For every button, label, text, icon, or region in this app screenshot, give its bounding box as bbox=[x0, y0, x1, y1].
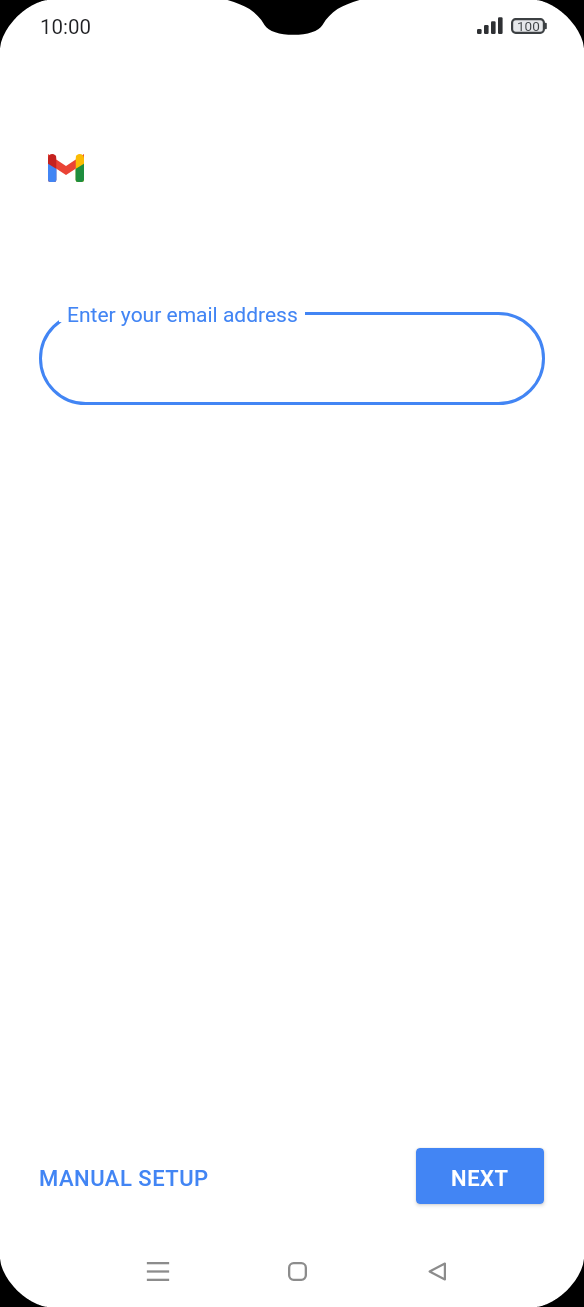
button[interactable]: Recent apps bbox=[130, 1243, 186, 1299]
button[interactable]: MANUAL SETUP bbox=[23, 1151, 225, 1207]
staticText: MANUAL SETUP bbox=[39, 1166, 209, 1192]
button[interactable]: Home bbox=[269, 1243, 325, 1299]
button[interactable]: NEXT bbox=[416, 1148, 544, 1204]
staticText: 100 bbox=[517, 18, 540, 34]
staticText: Enter your email address bbox=[67, 303, 298, 328]
staticText: NEXT bbox=[451, 1166, 509, 1192]
button[interactable]: Enter your email address bbox=[39, 312, 545, 405]
button[interactable]: Back bbox=[409, 1243, 465, 1299]
staticText: 10:00 bbox=[40, 15, 92, 39]
